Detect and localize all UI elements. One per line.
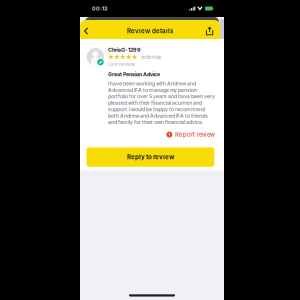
staticText: Report review <box>175 131 215 138</box>
staticText: Live review <box>108 61 135 67</box>
staticText: Review details <box>127 27 173 35</box>
staticText: yesterday <box>141 54 162 60</box>
staticText: 00:13 <box>92 5 107 12</box>
staticText: Great Pension Advice <box>108 71 160 78</box>
button[interactable]: Reply to review <box>86 147 214 167</box>
button[interactable]: Report review <box>166 131 215 138</box>
button[interactable]: Share <box>199 20 220 42</box>
staticText: ChrisG-1299 <box>108 46 141 53</box>
button[interactable]: Back <box>80 20 92 42</box>
staticText: I have been working with Andrew and Adva… <box>108 80 215 125</box>
staticText: Reply to review <box>127 153 174 161</box>
